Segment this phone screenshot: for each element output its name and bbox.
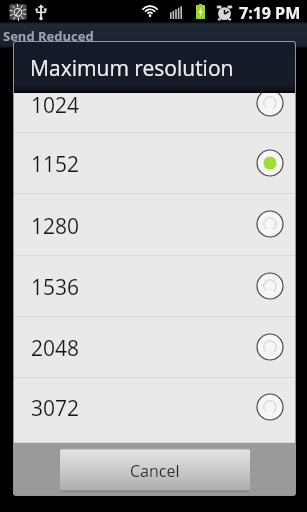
button[interactable]: Cancel (60, 448, 250, 492)
staticText: Cancel (130, 460, 180, 482)
button[interactable]: 1536 (14, 256, 295, 317)
button[interactable]: 2048 (14, 317, 295, 378)
button[interactable]: 1152 (14, 133, 295, 194)
staticText: 2048 (31, 334, 80, 363)
staticText: 1024 (31, 93, 80, 120)
button[interactable]: 1024 (14, 93, 295, 133)
staticText: 1152 (31, 150, 80, 179)
button[interactable]: 3072 (14, 378, 295, 443)
button[interactable]: 1280 (14, 194, 295, 256)
staticText: Send Reduced (3, 27, 94, 45)
staticText: 7:19 PM (239, 2, 301, 24)
staticText: 3072 (31, 394, 80, 423)
staticText: Maximum resolution (30, 54, 234, 83)
staticText: 1280 (31, 212, 80, 241)
staticText: 1536 (31, 273, 80, 302)
